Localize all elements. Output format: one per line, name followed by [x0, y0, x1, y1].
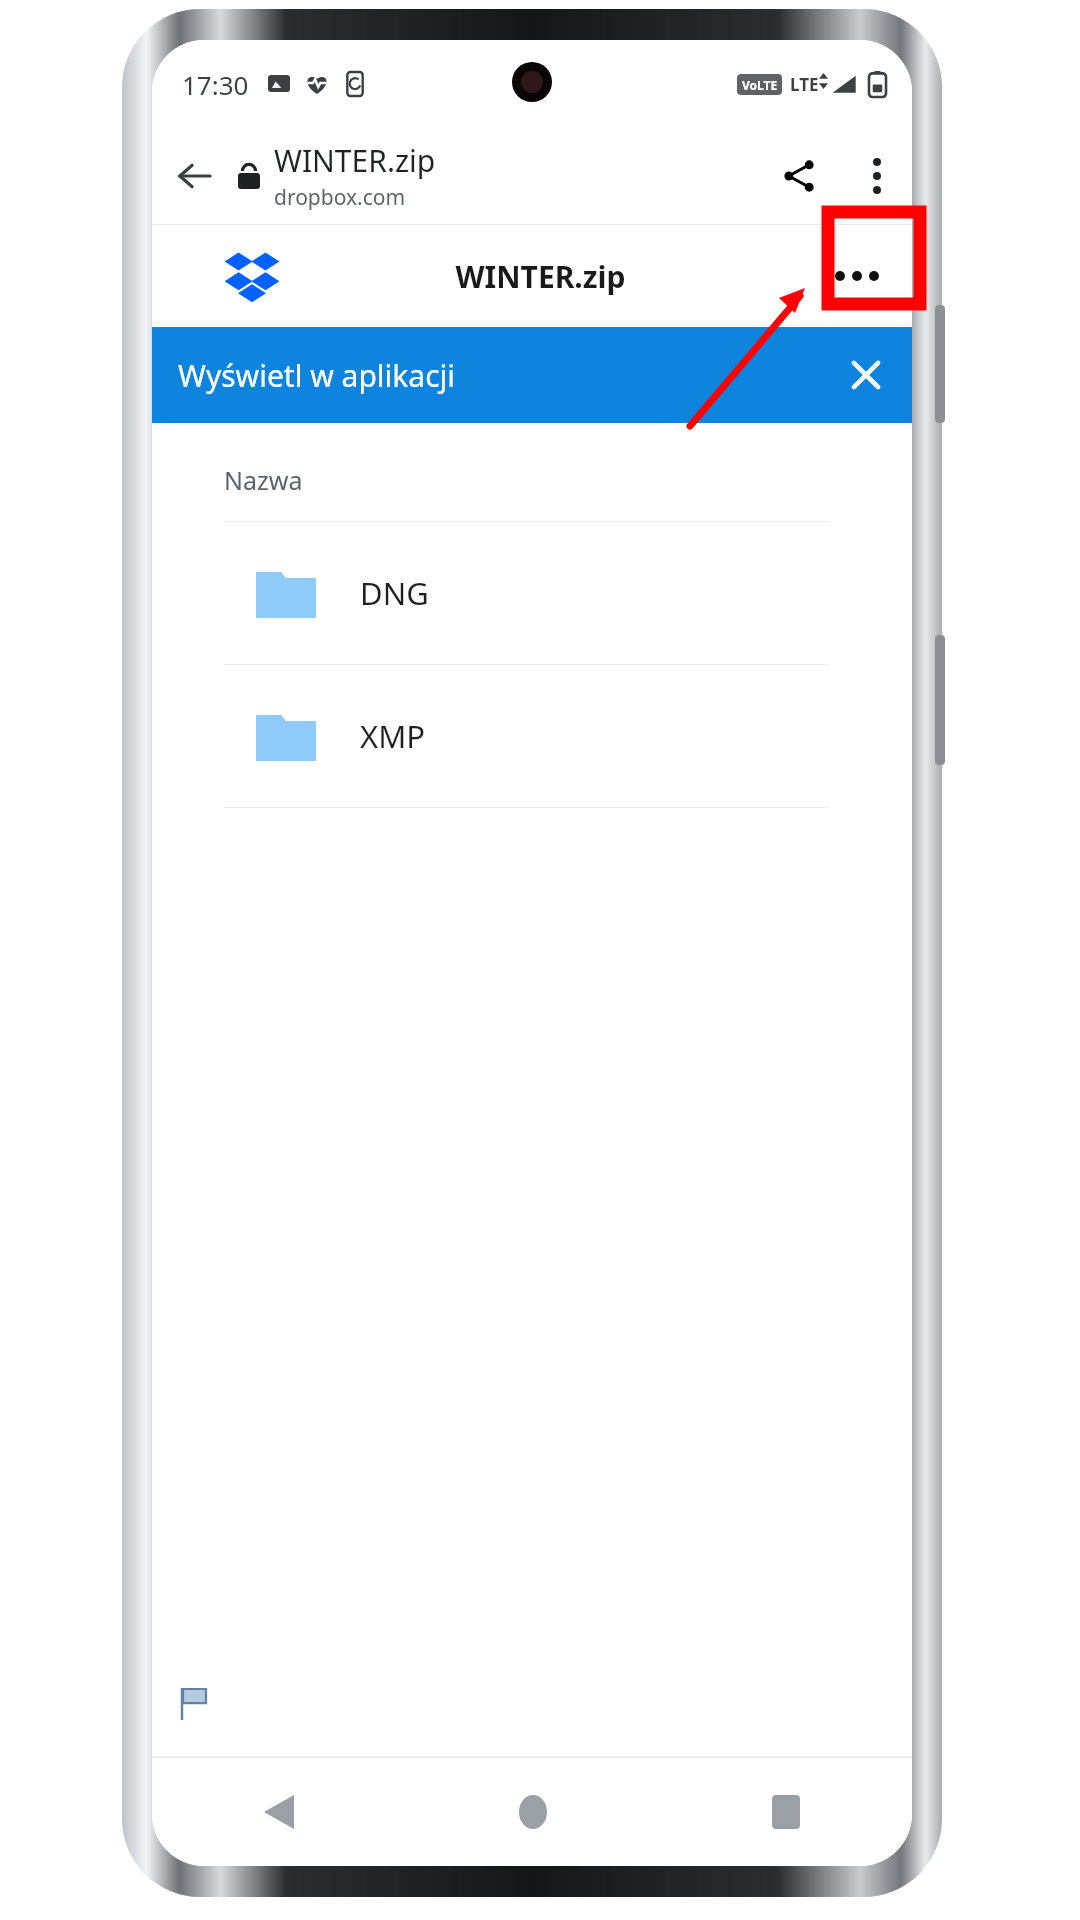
- button[interactable]: Wyświetl w aplikacji: [152, 327, 912, 423]
- button[interactable]: Close: [820, 327, 912, 423]
- button[interactable]: DNG: [152, 522, 912, 664]
- button[interactable]: XMP: [152, 665, 912, 807]
- staticText: 17:30: [182, 67, 249, 102]
- button[interactable]: Home: [406, 1758, 659, 1866]
- staticText: WINTER.zip: [274, 140, 436, 181]
- button[interactable]: More: [802, 225, 912, 327]
- staticText: DNG: [360, 572, 429, 614]
- button[interactable]: Share: [756, 128, 842, 224]
- button[interactable]: Recents: [659, 1758, 912, 1866]
- staticText: VoLTE: [742, 77, 778, 93]
- staticText: dropbox.com: [274, 183, 406, 212]
- button[interactable]: Back: [152, 128, 238, 224]
- staticText: Wyświetl w aplikacji: [178, 355, 456, 396]
- staticText: WINTER.zip: [455, 256, 626, 297]
- button[interactable]: Back: [152, 1758, 406, 1866]
- button[interactable]: More options: [842, 128, 912, 224]
- staticText: Nazwa: [224, 463, 303, 497]
- staticText: XMP: [360, 715, 426, 757]
- staticText: LTE: [790, 73, 819, 96]
